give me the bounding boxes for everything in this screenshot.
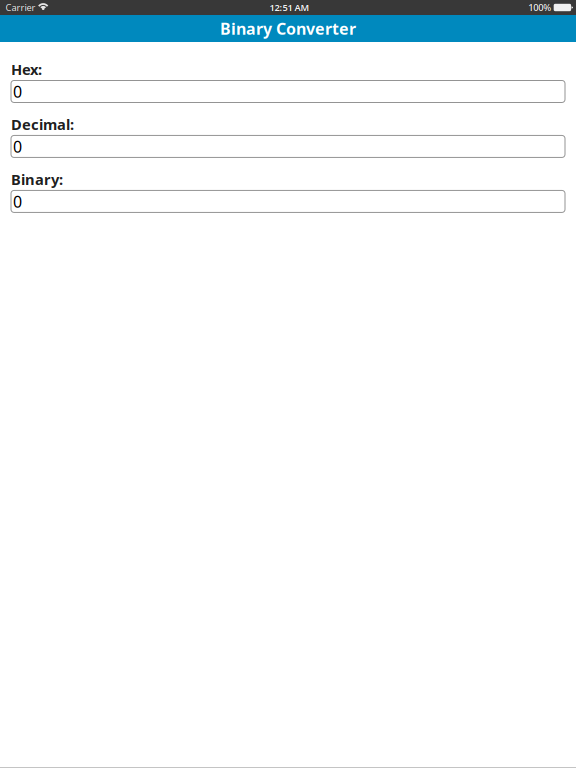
staticText: Decimal: <box>11 114 74 134</box>
staticText: Hex: <box>11 59 42 79</box>
staticText: Binary Converter <box>220 18 356 39</box>
staticText: 0 <box>13 81 22 102</box>
staticText: Binary: <box>11 169 63 189</box>
button[interactable]: Hex: <box>11 80 565 102</box>
staticText: Carrier <box>5 1 35 14</box>
staticText: 0 <box>13 191 22 212</box>
staticText: 0 <box>13 136 22 157</box>
button[interactable]: Decimal: <box>11 135 565 157</box>
staticText: 12:51 AM <box>269 1 309 14</box>
staticText: 100% <box>528 1 551 14</box>
button[interactable]: Binary: <box>11 190 565 212</box>
